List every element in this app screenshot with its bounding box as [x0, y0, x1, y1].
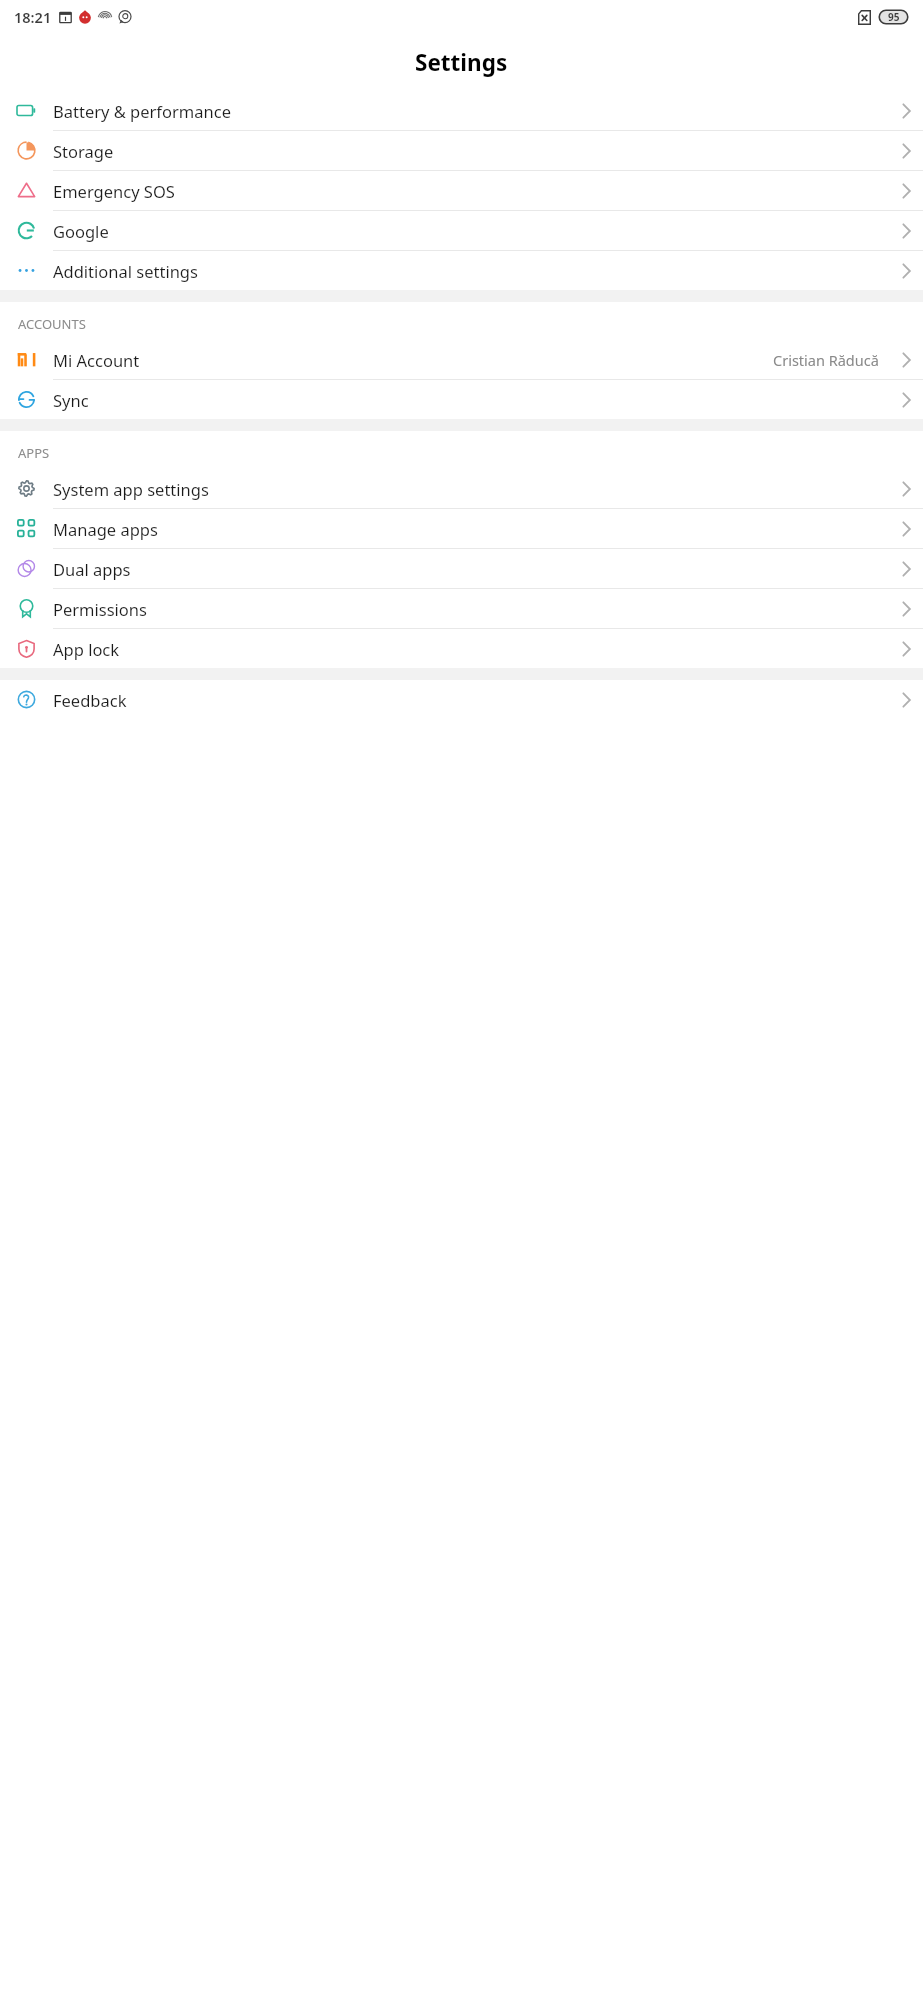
staticText: App lock — [53, 638, 889, 660]
button[interactable]: Manage apps — [0, 509, 923, 549]
button[interactable]: Mi Account — [0, 340, 923, 380]
staticText: Mi Account — [53, 349, 773, 371]
staticText: Dual apps — [53, 558, 889, 580]
staticText: Cristian Răducă — [773, 350, 879, 370]
button[interactable]: Sync — [0, 380, 923, 419]
button[interactable]: Battery & performance — [0, 91, 923, 131]
button[interactable]: Dual apps — [0, 549, 923, 589]
staticText: Storage — [53, 140, 889, 162]
button[interactable]: System app settings — [0, 469, 923, 509]
button[interactable]: Emergency SOS — [0, 171, 923, 211]
staticText: Feedback — [53, 689, 889, 711]
button[interactable]: Google — [0, 211, 923, 251]
staticText: 18:21 — [14, 7, 52, 27]
button[interactable]: Feedback — [0, 680, 923, 719]
staticText: Permissions — [53, 598, 889, 620]
button[interactable]: Additional settings — [0, 251, 923, 290]
staticText: ACCOUNTS — [18, 315, 86, 333]
button[interactable]: Permissions — [0, 589, 923, 629]
button[interactable]: App lock — [0, 629, 923, 668]
staticText: Manage apps — [53, 518, 889, 540]
staticText: System app settings — [53, 478, 889, 500]
button[interactable]: Storage — [0, 131, 923, 171]
staticText: Settings — [415, 47, 508, 78]
staticText: Battery & performance — [53, 100, 889, 122]
staticText: Emergency SOS — [53, 180, 889, 202]
staticText: Sync — [53, 389, 889, 411]
staticText: 95 — [888, 10, 900, 24]
staticText: Google — [53, 220, 889, 242]
staticText: Additional settings — [53, 260, 889, 282]
staticText: APPS — [18, 444, 50, 462]
